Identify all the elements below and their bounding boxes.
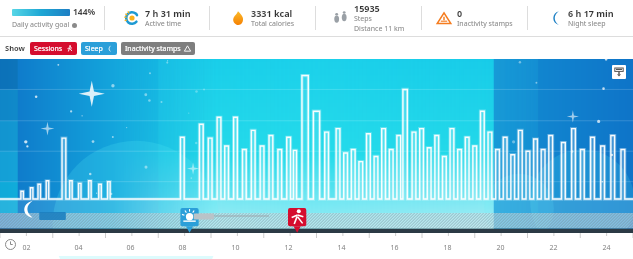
button[interactable]: Sessions — [30, 42, 77, 55]
staticText: 08 — [178, 243, 187, 253]
staticText: 12 — [284, 243, 293, 253]
button[interactable]: 6 h 17 min — [528, 0, 633, 36]
staticText: 04 — [74, 243, 83, 253]
staticText: Steps — [354, 14, 372, 24]
button[interactable]: Time axis — [5, 239, 16, 250]
staticText: 3331 kcal — [251, 7, 293, 19]
staticText: Total calories — [251, 19, 295, 29]
staticText: 15935 — [354, 2, 380, 14]
staticText: 02 — [22, 243, 31, 253]
staticText: 10 — [231, 243, 240, 253]
button[interactable]: 7 h 31 min — [105, 0, 209, 36]
staticText: 24 — [602, 243, 611, 253]
staticText: Sleep — [85, 44, 103, 54]
staticText: 20 — [496, 243, 505, 253]
staticText: 22 — [549, 243, 558, 253]
button[interactable]: Sleep — [81, 42, 117, 55]
staticText: 144% — [73, 6, 96, 18]
staticText: Show — [5, 43, 25, 53]
staticText: Night sleep — [568, 19, 606, 29]
button[interactable]: 15935 — [316, 0, 421, 36]
button[interactable]: Inactivity stamps — [121, 42, 195, 55]
staticText: 14 — [337, 243, 346, 253]
button[interactable]: Chart settings — [612, 65, 626, 79]
staticText: Daily activity goal — [12, 20, 70, 30]
button[interactable]: 144% — [0, 0, 104, 36]
button[interactable]: 3331 kcal — [210, 0, 315, 36]
staticText: 0 — [457, 7, 463, 19]
staticText: 6 h 17 min — [568, 7, 614, 19]
staticText: 18 — [443, 243, 452, 253]
button[interactable]: 0 — [422, 0, 527, 36]
staticText: Active time — [145, 19, 182, 29]
staticText: Inactivity stamps — [457, 19, 513, 29]
staticText: Inactivity stamps — [125, 44, 181, 54]
staticText: Sessions — [34, 44, 63, 54]
button[interactable] — [0, 59, 633, 233]
staticText: Distance 11 km — [354, 24, 405, 34]
staticText: 16 — [390, 243, 399, 253]
staticText: 7 h 31 min — [145, 7, 191, 19]
staticText: 06 — [126, 243, 135, 253]
